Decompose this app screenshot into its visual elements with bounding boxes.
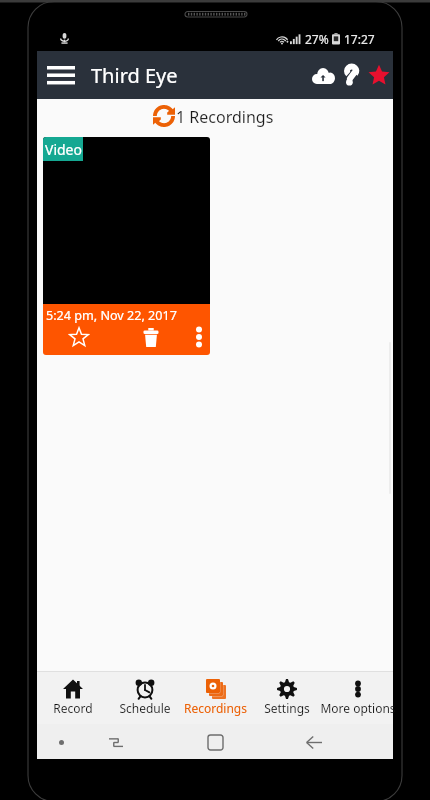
button[interactable]: More options xyxy=(187,320,210,354)
button[interactable]: Video xyxy=(43,137,210,355)
button[interactable]: Recent apps xyxy=(100,726,132,758)
staticText: 5:24 pm, Nov 22, 2017 xyxy=(46,307,177,324)
staticText: 17:27 xyxy=(344,31,375,47)
staticText: Recordings xyxy=(184,700,247,716)
staticText: More options xyxy=(320,700,396,716)
button[interactable]: Upload to cloud xyxy=(306,58,341,93)
staticText: Video xyxy=(45,140,82,159)
staticText: Record xyxy=(53,700,93,716)
button[interactable]: Record xyxy=(37,672,109,724)
button[interactable]: Mark as favourite xyxy=(43,320,115,354)
staticText: Third Eye xyxy=(91,62,178,89)
button[interactable]: Home xyxy=(199,726,231,758)
button[interactable]: Help xyxy=(335,59,368,92)
button[interactable]: Rate this app xyxy=(362,58,396,92)
button[interactable]: Recordings xyxy=(180,672,251,724)
button[interactable]: Open navigation drawer xyxy=(43,57,79,93)
staticText: Settings xyxy=(264,700,310,716)
staticText: 27% xyxy=(305,31,329,47)
button[interactable]: Schedule xyxy=(109,672,180,724)
button[interactable]: Menu xyxy=(45,726,77,758)
staticText: 1 Recordings xyxy=(176,106,274,128)
staticText: Schedule xyxy=(119,700,171,716)
button[interactable]: Settings xyxy=(251,672,322,724)
button[interactable]: More options xyxy=(322,672,393,724)
button[interactable]: Delete recording xyxy=(115,320,187,354)
button[interactable]: Back xyxy=(298,726,330,758)
